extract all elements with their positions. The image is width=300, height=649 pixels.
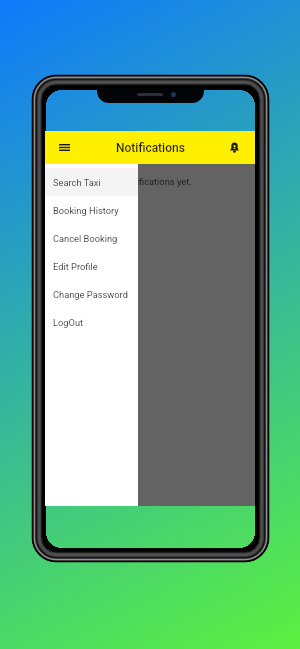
staticText: LogOut <box>53 317 84 328</box>
button[interactable]: Booking History <box>45 196 138 224</box>
button[interactable]: Cancel Booking <box>45 224 138 252</box>
button[interactable]: Change Password <box>45 280 138 308</box>
staticText: Edit Profile <box>53 261 98 272</box>
staticText: Cancel Booking <box>53 233 118 244</box>
button[interactable]: Search Taxi <box>45 168 138 196</box>
button[interactable]: LogOut <box>45 308 138 336</box>
staticText: No notifications yet. <box>109 176 192 187</box>
staticText: Notifications <box>116 141 185 155</box>
staticText: Change Password <box>53 289 128 300</box>
button[interactable]: Notifications <box>218 131 251 164</box>
staticText: Booking History <box>53 205 119 216</box>
button[interactable]: Open navigation drawer <box>48 131 81 164</box>
button[interactable]: Edit Profile <box>45 252 138 280</box>
staticText: Search Taxi <box>53 177 101 188</box>
